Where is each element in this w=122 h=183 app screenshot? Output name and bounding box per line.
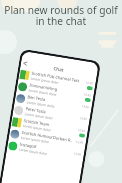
staticText: Chat bbox=[53, 65, 65, 73]
staticText: Peter Tesla bbox=[25, 106, 47, 114]
staticText: Lorem ipsum dolor bbox=[30, 76, 59, 85]
staticText: 12:45 bbox=[85, 80, 94, 86]
button[interactable]: Ben Tesla bbox=[14, 91, 92, 116]
staticText: 12:45 bbox=[74, 151, 82, 157]
staticText: Scottish Team bbox=[23, 118, 51, 127]
staticText: Lorem ipsum dolor bbox=[26, 100, 56, 109]
staticText: Lorem ipsum dolor bbox=[28, 88, 58, 97]
staticText: Lorem ipsum dolor bbox=[19, 147, 48, 156]
button[interactable]: Ironman'sFling bbox=[16, 79, 94, 104]
staticText: 12:45 bbox=[83, 92, 92, 97]
button[interactable]: Instagolf bbox=[7, 139, 84, 163]
staticText: 12:45 bbox=[79, 116, 88, 121]
staticText: 12:45 bbox=[78, 128, 86, 133]
button[interactable]: Scottish Team bbox=[10, 115, 88, 139]
button[interactable]: Scottish Pub Channel Test bbox=[18, 68, 96, 92]
staticText: Scottish HumourDurban R.. bbox=[21, 130, 73, 143]
button[interactable]: Back bbox=[20, 59, 29, 68]
staticText: Lorem ipsum dolor bbox=[22, 124, 52, 132]
staticText: Lorem ipsum dolor bbox=[24, 112, 54, 121]
staticText: Lorem ipsum dolor bbox=[20, 136, 50, 144]
staticText: Ben Tesla bbox=[27, 94, 46, 102]
staticText: 12:45 bbox=[76, 140, 84, 145]
staticText: Scottish Pub Channel Test bbox=[31, 71, 80, 83]
button[interactable]: Scottish HumourDurban R.. bbox=[8, 127, 86, 151]
staticText: Instagolf bbox=[19, 142, 37, 149]
staticText: 12:45 bbox=[81, 104, 90, 109]
staticText: Plan new rounds of golf in the chat bbox=[1, 3, 121, 28]
button[interactable]: Peter Tesla bbox=[12, 103, 90, 127]
staticText: Ironman'sFling bbox=[29, 82, 58, 92]
